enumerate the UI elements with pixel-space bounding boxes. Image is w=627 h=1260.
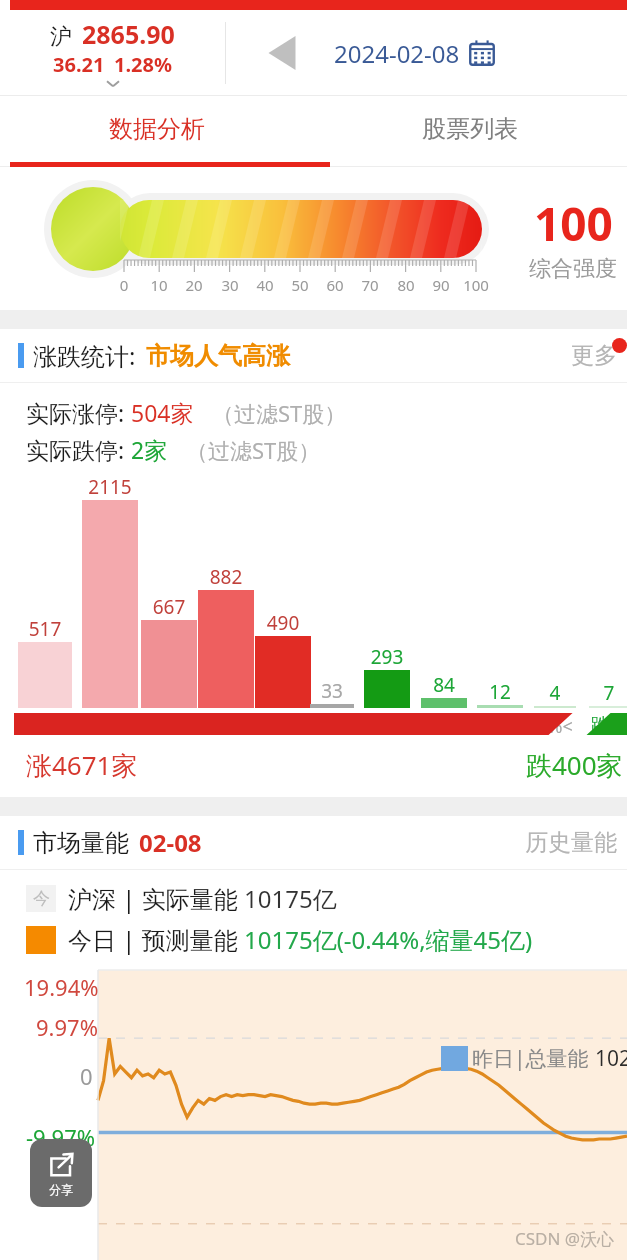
staticText: -9.97% — [26, 1122, 96, 1152]
staticText: 5~7% — [465, 714, 535, 739]
staticText: 2865.90 — [82, 17, 175, 51]
staticText: 5~2% — [186, 714, 266, 739]
staticText: 0 — [80, 1061, 93, 1091]
staticText: 实际跌停: — [26, 434, 131, 465]
staticText: 跌400家 — [526, 747, 623, 783]
staticText: 60 — [317, 275, 353, 295]
staticText: 2~0% — [243, 714, 323, 739]
staticText: 12 — [461, 679, 539, 705]
staticText: 今日 | 预测量能 — [68, 923, 244, 956]
staticText: 涨跌统计: — [33, 339, 136, 372]
staticText: 实际涨停: — [26, 397, 131, 428]
staticText: 7%< — [522, 714, 588, 739]
staticText: 9.97% — [36, 1012, 98, 1042]
staticText: 跌停 — [577, 714, 627, 737]
staticText: 市场人气高涨 — [146, 341, 290, 371]
staticText: 0~2% — [352, 714, 422, 739]
staticText: 沪 — [50, 23, 72, 51]
staticText: 2024-02-08 — [334, 37, 460, 70]
staticText: 33 — [294, 678, 370, 704]
staticText: 02-08 — [139, 826, 202, 859]
staticText: 293 — [348, 644, 426, 670]
staticText: 40 — [247, 275, 283, 295]
staticText: 517 — [2, 616, 88, 642]
staticText: 30 — [212, 275, 248, 295]
button[interactable]: 2024-02-08 — [320, 29, 510, 77]
button[interactable]: 数据分析 — [0, 96, 313, 162]
staticText: 沪深 | 实际量能 — [68, 882, 244, 915]
staticText: 667 — [125, 594, 213, 620]
staticText: 涨停 — [6, 714, 84, 737]
staticText: 1.28% — [114, 51, 172, 78]
staticText: 100 — [534, 192, 613, 255]
staticText: 490 — [239, 610, 327, 636]
staticText: 84 — [405, 672, 483, 698]
staticText: CSDN @沃心 — [515, 1227, 615, 1250]
staticText: 市场量能 — [33, 828, 129, 858]
staticText: 0 — [106, 275, 142, 295]
staticText: 10 — [141, 275, 177, 295]
button[interactable]: 更多 — [571, 341, 617, 370]
button[interactable]: 上一天 — [258, 29, 306, 77]
staticText: 昨日|总量能 — [472, 1044, 595, 1073]
staticText: 10219亿 — [595, 1044, 627, 1073]
staticText: 平 — [298, 714, 366, 737]
staticText: 10175亿 — [244, 882, 337, 915]
staticText: 2家 — [131, 434, 168, 465]
staticText: 更多 — [571, 341, 617, 370]
staticText: 50 — [282, 275, 318, 295]
staticText: 历史量能 — [525, 828, 617, 857]
staticText: 10175亿(-0.44%,缩量45亿) — [244, 923, 533, 956]
staticText: 19.94% — [24, 972, 99, 1002]
button[interactable]: 分享 — [30, 1139, 92, 1207]
button[interactable]: 股票列表 — [313, 96, 627, 162]
staticText: 7~5% — [129, 714, 209, 739]
staticText: 2~5% — [409, 714, 479, 739]
staticText: 100 — [458, 275, 494, 295]
staticText: 504家 — [131, 397, 194, 428]
button[interactable]: 历史量能 — [525, 828, 617, 857]
staticText: 80 — [388, 275, 424, 295]
staticText: 数据分析 — [109, 114, 205, 144]
staticText: 今 — [33, 888, 50, 909]
staticText: 70 — [352, 275, 388, 295]
staticText: 2115 — [66, 474, 154, 500]
staticText: >7% — [70, 714, 150, 739]
staticText: 综合强度 — [529, 255, 617, 283]
staticText: 882 — [182, 564, 270, 590]
button[interactable]: 沪 — [0, 10, 225, 95]
staticText: 7 — [573, 680, 627, 706]
staticText: （过滤ST股） — [186, 435, 321, 465]
staticText: 90 — [423, 275, 459, 295]
staticText: 36.21 — [53, 51, 105, 78]
staticText: 4 — [518, 680, 592, 706]
staticText: 20 — [176, 275, 212, 295]
staticText: 涨4671家 — [26, 747, 138, 783]
staticText: 股票列表 — [422, 114, 518, 144]
staticText: 分享 — [49, 1182, 73, 1197]
staticText: （过滤ST股） — [212, 398, 347, 428]
